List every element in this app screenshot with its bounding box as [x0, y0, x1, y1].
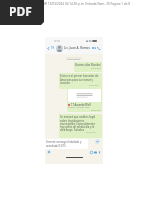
button[interactable]: Secreto conseguí habilado y acordado 03/… [45, 139, 88, 149]
button[interactable]: Scroll to bottom [95, 139, 100, 144]
staticText: W 13/03/2024 02:14:56 p.m Entrada Nom. 2… [44, 2, 131, 6]
staticText: 2:14 [54, 40, 60, 44]
button[interactable]: Attach [47, 150, 51, 154]
button[interactable]: Voice message [98, 151, 101, 154]
button[interactable]: Video call [92, 46, 96, 50]
staticText: Se enviará que análisis legal sobre legi… [60, 115, 96, 131]
staticText: Estos es el primer borrador de Anuncios … [60, 74, 99, 84]
button[interactable]: Camera [94, 151, 97, 154]
button[interactable]: Back [46, 46, 51, 51]
staticText: PDF [9, 3, 32, 19]
button[interactable]: Sticker [90, 151, 93, 154]
staticText: 19 [51, 46, 55, 50]
button[interactable]: PDF document [0, 0, 44, 25]
staticText: 13/03/2024 [67, 57, 81, 60]
staticText: Secreto conseguí habilado y acordado 03/… [46, 140, 82, 147]
staticText: 4 págs · 1015 kB · pdf [68, 106, 89, 109]
staticText: 02:14 p.m. [89, 84, 99, 87]
staticText: 02:14 p.m. [91, 109, 101, 111]
button[interactable]: Se enviará que análisis legal sobre legi… [59, 114, 102, 138]
button[interactable]: Estos es el primer borrador de Anuncios … [59, 73, 102, 89]
staticText: 02:14 p.m. [86, 131, 96, 134]
staticText: Buenos días Maribel [75, 63, 101, 67]
staticText: Lic. Juan A. Ramos [64, 46, 90, 50]
staticText: 17 Acuerdo IPalf [71, 103, 91, 106]
button[interactable]: Buenos días Maribel [74, 62, 102, 72]
staticText: 02:14 p.m. [91, 67, 101, 70]
button[interactable]: 17 Acuerdo IPalf [67, 88, 102, 112]
button[interactable]: Voice call [97, 46, 101, 50]
